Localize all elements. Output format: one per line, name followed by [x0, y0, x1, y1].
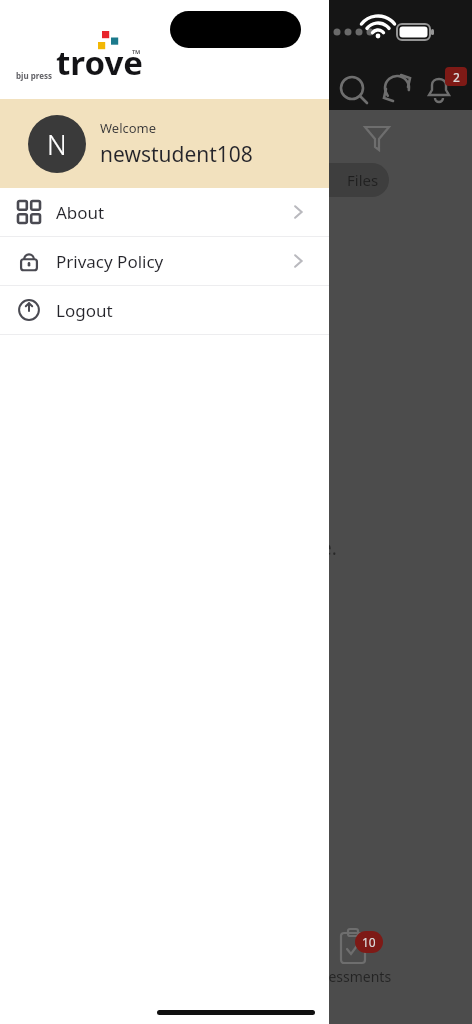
staticText: N: [47, 126, 67, 163]
staticText: 2: [453, 69, 460, 85]
staticText: Privacy Policy: [56, 250, 289, 273]
staticText: Logout: [56, 299, 307, 322]
button[interactable]: About: [0, 188, 329, 236]
staticText: Welcome: [100, 119, 157, 137]
staticText: About: [56, 201, 289, 224]
button[interactable]: Filter: [355, 116, 399, 160]
staticText: e.: [321, 535, 337, 561]
staticText: trove: [56, 40, 143, 85]
button[interactable]: Privacy Policy: [0, 237, 329, 285]
staticText: 10: [362, 934, 376, 950]
button[interactable]: Files: [291, 163, 389, 197]
button[interactable]: 10: [321, 925, 464, 995]
button[interactable]: N: [0, 99, 329, 188]
staticText: newstudent108: [100, 140, 253, 169]
button[interactable]: Notifications, 2 new: [419, 66, 463, 110]
button[interactable]: Search: [331, 66, 375, 110]
staticText: ssessments: [315, 967, 392, 986]
staticText: Files: [347, 170, 379, 190]
button[interactable]: Refresh: [375, 66, 419, 110]
staticText: bju press: [16, 70, 52, 81]
staticText: ™: [132, 46, 141, 61]
button[interactable]: Logout: [0, 286, 329, 334]
